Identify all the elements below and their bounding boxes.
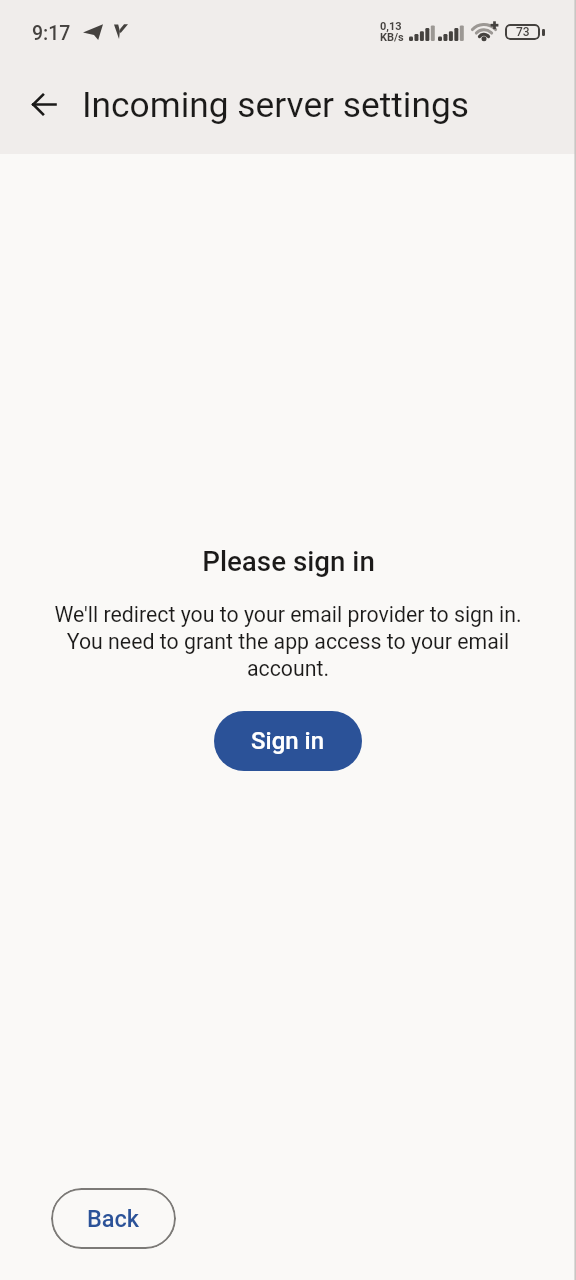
button[interactable]: Back (18, 78, 70, 130)
staticText: Incoming server settings (82, 84, 469, 125)
staticText: We'll redirect you to your email provide… (50, 602, 526, 681)
button[interactable]: Back (51, 1188, 176, 1249)
staticText: 9:17 (32, 22, 71, 45)
staticText: Sign in (251, 727, 325, 755)
staticText: 73 (516, 25, 530, 39)
button[interactable]: Sign in (214, 711, 362, 771)
staticText: Back (87, 1205, 140, 1233)
staticText: 0,13 KB/s (380, 20, 404, 43)
staticText: Please sign in (202, 545, 375, 577)
